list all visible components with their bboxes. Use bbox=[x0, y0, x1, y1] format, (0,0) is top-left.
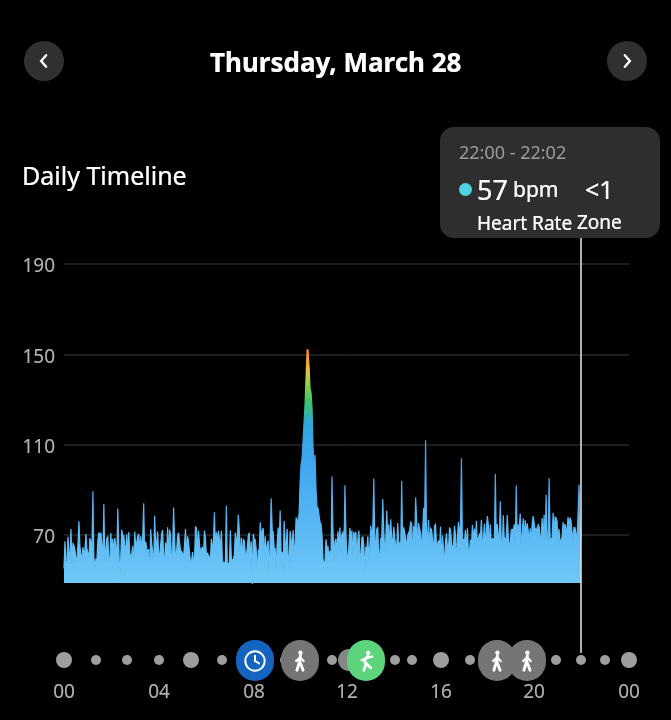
staticText: Heart Rate bbox=[477, 210, 573, 236]
button[interactable]: 22:00 - 22:02 bbox=[440, 127, 660, 238]
staticText: 57 bbox=[477, 171, 508, 208]
staticText: 70 bbox=[33, 523, 55, 549]
staticText: 12 bbox=[336, 678, 358, 704]
staticText: 20 bbox=[523, 678, 545, 704]
staticText: 110 bbox=[22, 433, 55, 459]
staticText: Thursday, March 28 bbox=[210, 44, 462, 79]
button[interactable]: Previous day bbox=[24, 41, 64, 81]
staticText: 150 bbox=[22, 343, 55, 369]
staticText: 16 bbox=[430, 678, 452, 704]
staticText: Daily Timeline bbox=[22, 158, 187, 192]
staticText: 04 bbox=[148, 678, 170, 704]
staticText: 00 bbox=[53, 678, 75, 704]
staticText: 190 bbox=[22, 252, 55, 278]
button[interactable]: Walk bbox=[281, 640, 319, 681]
button[interactable]: Walk bbox=[478, 640, 516, 681]
staticText: bpm bbox=[513, 175, 559, 204]
button[interactable]: Walk bbox=[508, 640, 546, 681]
staticText: 00 bbox=[618, 678, 640, 704]
button[interactable]: Sleep bbox=[236, 640, 274, 681]
button[interactable]: Run bbox=[347, 640, 385, 681]
staticText: 22:00 - 22:02 bbox=[459, 140, 567, 165]
staticText: <1 bbox=[585, 172, 614, 206]
button[interactable]: Next day bbox=[607, 41, 647, 81]
staticText: Zone bbox=[577, 209, 622, 235]
staticText: 08 bbox=[243, 678, 265, 704]
